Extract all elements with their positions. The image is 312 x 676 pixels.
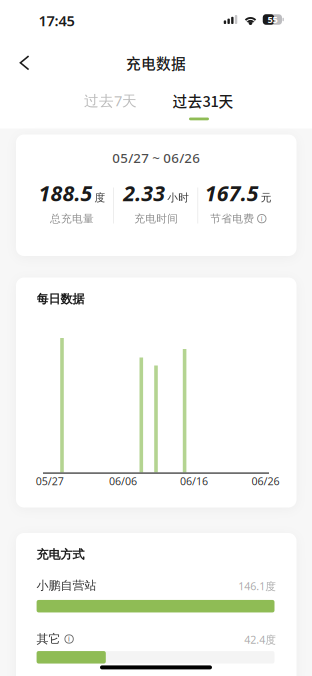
staticText: 充电方式: [37, 547, 85, 562]
staticText: 42.4度: [244, 632, 276, 647]
staticText: i: [68, 635, 70, 643]
staticText: i: [261, 214, 263, 223]
staticText: 过去31天: [172, 90, 233, 111]
button[interactable]: 过去7天: [76, 85, 145, 116]
button[interactable]: Info: [65, 634, 74, 643]
staticText: 节省电费: [210, 212, 254, 225]
staticText: 2.33: [123, 179, 165, 207]
staticText: 过去7天: [84, 91, 137, 110]
staticText: 55: [267, 13, 277, 26]
staticText: 小鹏自营站: [37, 578, 97, 593]
staticText: 188.5: [38, 179, 92, 207]
staticText: 总充电量: [50, 212, 94, 225]
button[interactable]: Info: [257, 214, 266, 223]
button[interactable]: 过去31天: [164, 84, 241, 117]
staticText: 167.5: [205, 179, 259, 207]
staticText: 其它: [37, 632, 61, 646]
staticText: 充电时间: [134, 212, 178, 225]
staticText: 05/27 ~ 06/26: [112, 149, 200, 167]
staticText: 146.1度: [238, 579, 276, 593]
staticText: 17:45: [38, 11, 74, 30]
staticText: 05/27: [36, 474, 64, 488]
staticText: 度: [94, 191, 105, 204]
button[interactable]: Back: [12, 48, 37, 77]
staticText: 元: [261, 191, 272, 204]
staticText: 06/26: [251, 474, 279, 488]
staticText: 06/06: [109, 474, 137, 488]
staticText: 小时: [167, 191, 189, 204]
staticText: 06/16: [180, 474, 208, 488]
staticText: 充电数据: [126, 52, 186, 73]
staticText: 每日数据: [37, 292, 85, 306]
